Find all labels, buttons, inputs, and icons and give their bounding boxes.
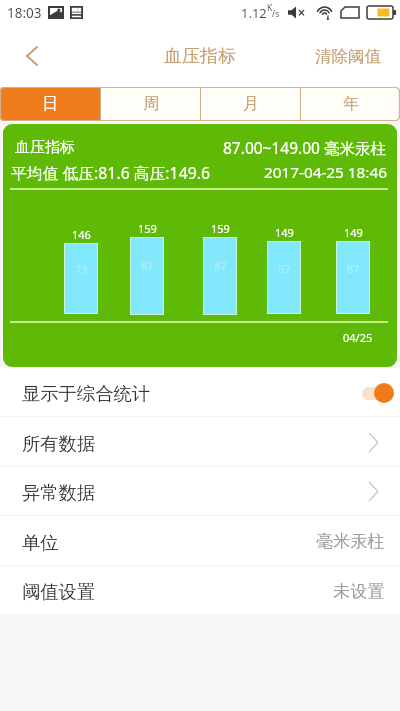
staticText: 异常数据	[22, 481, 96, 504]
staticText: 1.12	[241, 4, 267, 22]
staticText: 04/25	[343, 330, 373, 345]
staticText: 87	[214, 258, 227, 273]
button[interactable]: 日	[0, 87, 100, 121]
button[interactable]: 月	[201, 87, 300, 121]
staticText: 单位	[22, 531, 59, 554]
staticText: K	[267, 2, 273, 14]
button[interactable]: Back	[4, 26, 60, 87]
staticText: 87	[141, 258, 154, 273]
staticText: 毫米汞柱	[316, 530, 385, 552]
staticText: 87	[347, 261, 360, 276]
staticText: 159	[211, 221, 230, 236]
staticText: 阈值设置	[22, 580, 96, 603]
staticText: 月	[243, 94, 259, 114]
staticText: 显示于综合统计	[22, 382, 151, 405]
staticText: 87	[278, 261, 291, 276]
staticText: 日	[42, 94, 58, 114]
button[interactable]: 年	[301, 87, 400, 121]
button[interactable]: 异常数据	[0, 467, 400, 516]
staticText: 年	[343, 94, 359, 114]
staticText: 未设置	[333, 580, 385, 602]
staticText: /s	[272, 8, 280, 20]
staticText: 149	[275, 225, 294, 240]
staticText: 所有数据	[22, 432, 96, 455]
staticText: 149	[344, 225, 363, 240]
staticText: 146	[72, 227, 91, 242]
staticText: 血压指标	[164, 45, 236, 68]
staticText: 周	[143, 94, 159, 114]
button[interactable]: 阈值设置	[0, 566, 400, 615]
staticText: 87.00~149.00 毫米汞柱	[223, 137, 386, 158]
button[interactable]: 周	[101, 87, 200, 121]
button[interactable]: Toggle show in summary	[362, 383, 394, 403]
button[interactable]: 显示于综合统计	[0, 368, 400, 417]
staticText: 18:03	[7, 4, 42, 22]
button[interactable]: 清除阈值	[299, 30, 400, 83]
staticText: 73	[75, 262, 88, 277]
button[interactable]: 所有数据	[0, 417, 400, 467]
staticText: 血压指标	[15, 138, 75, 157]
staticText: 2017-04-25 18:46	[264, 162, 387, 183]
button[interactable]: 单位	[0, 516, 400, 566]
staticText: 平均值 低压:81.6 高压:149.6	[11, 162, 210, 184]
staticText: 159	[138, 221, 157, 236]
staticText: 清除阈值	[315, 46, 381, 67]
